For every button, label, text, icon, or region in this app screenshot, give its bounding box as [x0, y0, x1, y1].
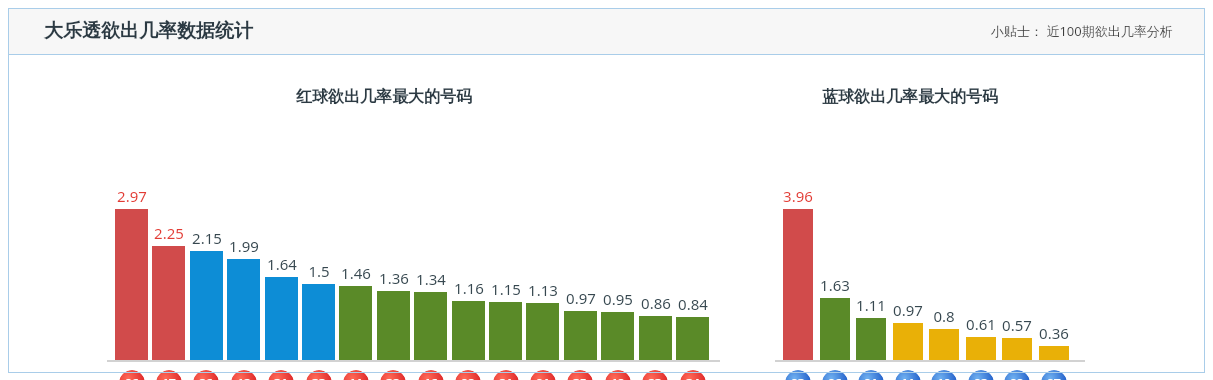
button[interactable]: 号码 19 — [605, 370, 631, 380]
staticText: 33 — [312, 375, 326, 380]
button[interactable]: 号码 11 — [343, 370, 369, 380]
staticText: 34 — [686, 375, 700, 380]
staticText: 2.15 — [192, 228, 222, 248]
button[interactable]: 号码 16 — [418, 370, 444, 380]
staticText: 0.36 — [1039, 323, 1069, 343]
staticText: 03 — [791, 375, 805, 380]
staticText: 0.84 — [678, 294, 708, 314]
staticText: 1.11 — [856, 295, 886, 315]
staticText: 26 — [199, 375, 213, 380]
staticText: 2.25 — [154, 223, 184, 243]
staticText: 09 — [1010, 375, 1024, 380]
button[interactable]: 号码 10 — [931, 370, 957, 380]
staticText: 21 — [499, 375, 513, 380]
button[interactable]: 号码 06 — [822, 370, 848, 380]
staticText: 01 — [536, 375, 550, 380]
staticText: 16 — [424, 375, 438, 380]
staticText: 1.13 — [528, 280, 558, 300]
staticText: 1.63 — [820, 275, 850, 295]
staticText: 08 — [461, 375, 475, 380]
staticText: 10 — [937, 375, 951, 380]
staticText: 2.97 — [117, 186, 147, 206]
button[interactable]: 大乐透欲出几率数据统计 — [8, 8, 1205, 54]
staticText: 大乐透欲出几率数据统计 — [44, 19, 253, 43]
button[interactable]: 号码 07 — [1041, 370, 1067, 380]
staticText: 1.16 — [454, 278, 484, 298]
button[interactable]: 号码 01 — [530, 370, 556, 380]
staticText: 06 — [125, 375, 139, 380]
staticText: 1.99 — [229, 236, 259, 256]
button[interactable]: 号码 01 — [858, 370, 884, 380]
button[interactable]: 号码 06 — [119, 370, 145, 380]
staticText: 1.36 — [379, 268, 409, 288]
staticText: 06 — [828, 375, 842, 380]
staticText: 17 — [162, 375, 176, 380]
staticText: 1.15 — [491, 279, 521, 299]
button[interactable]: 号码 31 — [268, 370, 294, 380]
staticText: 1.34 — [416, 269, 446, 289]
button[interactable]: 蓝球欲出几率最大的号码 — [822, 87, 998, 107]
button[interactable]: 号码 34 — [680, 370, 706, 380]
staticText: 01 — [864, 375, 878, 380]
staticText: 12 — [237, 375, 251, 380]
staticText: 11 — [901, 375, 915, 380]
button[interactable]: 号码 21 — [493, 370, 519, 380]
button[interactable]: 号码 12 — [231, 370, 257, 380]
staticText: 1.64 — [267, 254, 297, 274]
button[interactable]: 号码 03 — [785, 370, 811, 380]
staticText: 1.5 — [308, 261, 330, 281]
staticText: 0.97 — [893, 300, 923, 320]
staticText: 小贴士： 近100期欲出几率分析 — [991, 22, 1173, 40]
button[interactable]: 号码 02 — [968, 370, 994, 380]
staticText: 1.46 — [341, 263, 371, 283]
button[interactable]: 号码 35 — [567, 370, 593, 380]
staticText: 31 — [274, 375, 288, 380]
button[interactable]: 号码 09 — [1004, 370, 1030, 380]
staticText: 0.97 — [566, 288, 596, 308]
staticText: 3.96 — [783, 186, 813, 206]
staticText: 23 — [648, 375, 662, 380]
button[interactable]: 红球欲出几率最大的号码 — [296, 87, 472, 107]
staticText: 19 — [611, 375, 625, 380]
staticText: 07 — [1047, 375, 1061, 380]
button[interactable]: 号码 26 — [193, 370, 219, 380]
staticText: 35 — [573, 375, 587, 380]
button[interactable]: 号码 17 — [156, 370, 182, 380]
staticText: 0.86 — [641, 293, 671, 313]
staticText: 0.8 — [933, 306, 955, 326]
staticText: 蓝球欲出几率最大的号码 — [822, 87, 998, 107]
staticText: 0.61 — [966, 314, 996, 334]
button[interactable]: 号码 32 — [380, 370, 406, 380]
button[interactable]: 号码 11 — [895, 370, 921, 380]
staticText: 红球欲出几率最大的号码 — [296, 87, 472, 107]
button[interactable]: 号码 08 — [455, 370, 481, 380]
button[interactable]: 号码 23 — [642, 370, 668, 380]
staticText: 0.57 — [1002, 315, 1032, 335]
button[interactable]: 号码 33 — [306, 370, 332, 380]
staticText: 11 — [349, 375, 363, 380]
